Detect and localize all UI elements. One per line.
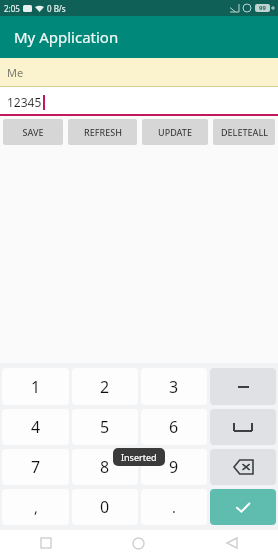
staticText: Me [7,65,24,80]
staticText: 2:05 [4,3,20,14]
staticText: 12345 [7,94,42,110]
staticText: 99 [259,4,266,12]
staticText: 4 [31,416,41,438]
button[interactable]: DELETEALL [213,119,275,145]
staticText: REFRESH [84,126,122,138]
button[interactable]: , [2,489,69,525]
button[interactable]: Backspace [210,449,276,485]
staticText: 3 [169,376,179,398]
staticText: . [172,498,176,517]
button[interactable]: SAVE [3,119,63,145]
button[interactable]: 8 [72,449,138,485]
staticText: 1 [31,376,41,398]
button[interactable]: 3 [141,368,207,405]
staticText: 9 [169,456,179,478]
button[interactable]: UPDATE [142,119,208,145]
staticText: My Application [14,27,119,47]
button[interactable]: Home [92,530,185,556]
button[interactable]: Enter [210,489,276,525]
staticText: 5 [100,416,110,438]
staticText: 8 [100,456,110,478]
button[interactable]: Minus [210,368,276,405]
button[interactable]: REFRESH [68,119,137,145]
staticText: 0 [100,496,110,518]
staticText: , [34,498,38,517]
staticText: Inserted [121,451,157,463]
button[interactable]: . [141,489,207,525]
button[interactable]: Space [210,409,276,445]
button[interactable]: 7 [2,449,69,485]
button[interactable]: Back [185,530,278,556]
staticText: 0 B/s [47,3,66,14]
button[interactable]: 1 [2,368,69,405]
button[interactable]: 6 [141,409,207,445]
button[interactable]: 2 [72,368,138,405]
button[interactable]: Me [0,58,278,87]
button[interactable]: 9 [141,449,207,485]
staticText: SAVE [22,126,44,138]
staticText: 6 [169,416,179,438]
button[interactable]: 5 [72,409,138,445]
button[interactable]: 12345 [0,87,278,116]
button[interactable]: 0 [72,489,138,525]
staticText: 2 [100,376,110,398]
staticText: UPDATE [158,126,192,138]
staticText: 7 [31,456,41,478]
button[interactable]: Recents [0,530,92,556]
staticText: DELETEALL [221,126,268,138]
button[interactable]: 4 [2,409,69,445]
